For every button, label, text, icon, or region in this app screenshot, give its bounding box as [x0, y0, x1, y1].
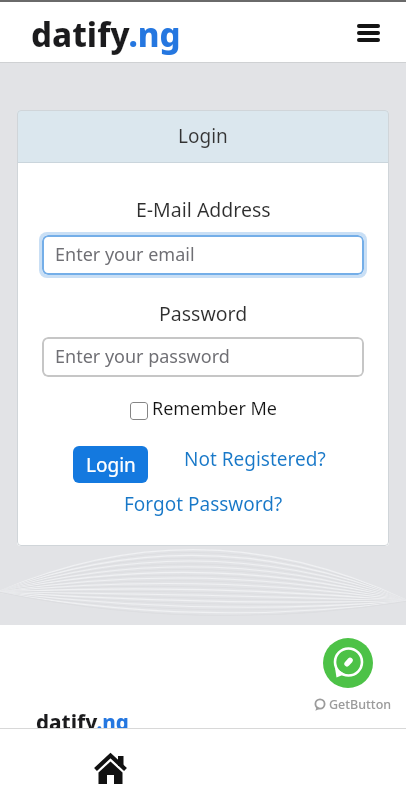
staticText: Not Registered? [184, 446, 326, 472]
staticText: Enter your password [55, 344, 230, 369]
staticText: GetButton [329, 696, 392, 713]
button[interactable]: Enter your password [42, 337, 364, 377]
button[interactable] [323, 638, 373, 688]
button[interactable]: Not Registered? [184, 446, 326, 472]
staticText: Forgot Password? [124, 491, 283, 517]
staticText: Login [178, 123, 228, 149]
staticText: Enter your email [55, 242, 195, 267]
staticText: Password [159, 300, 248, 327]
button[interactable] [94, 753, 127, 784]
button[interactable]: Remember Me [130, 396, 277, 421]
staticText: datify.ng [31, 12, 181, 57]
button[interactable]: Forgot Password? [124, 491, 283, 517]
staticText: Remember Me [152, 396, 277, 421]
button[interactable]: Enter your email [42, 235, 364, 275]
staticText: E-Mail Address [136, 196, 271, 223]
staticText: Login [86, 452, 136, 478]
button[interactable] [357, 24, 380, 42]
staticText: datify.ng [36, 708, 129, 728]
button[interactable]: Login [73, 446, 148, 483]
